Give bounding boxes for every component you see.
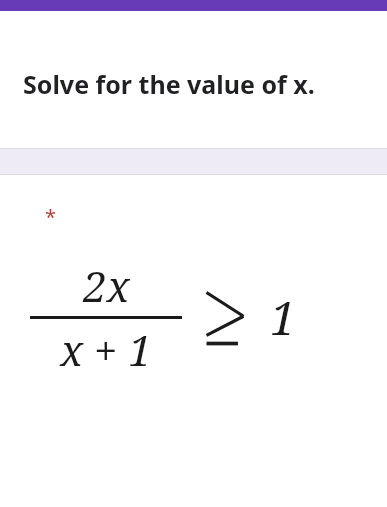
button[interactable]: Solve for the value of x. [0, 11, 387, 148]
staticText: Solve for the value of x. [23, 67, 315, 101]
staticText: 2x [83, 257, 130, 314]
staticText: * [45, 203, 57, 230]
staticText: x + 1 [60, 321, 152, 378]
staticText: 1 [270, 286, 296, 349]
other: greater than or equal to [204, 289, 246, 347]
